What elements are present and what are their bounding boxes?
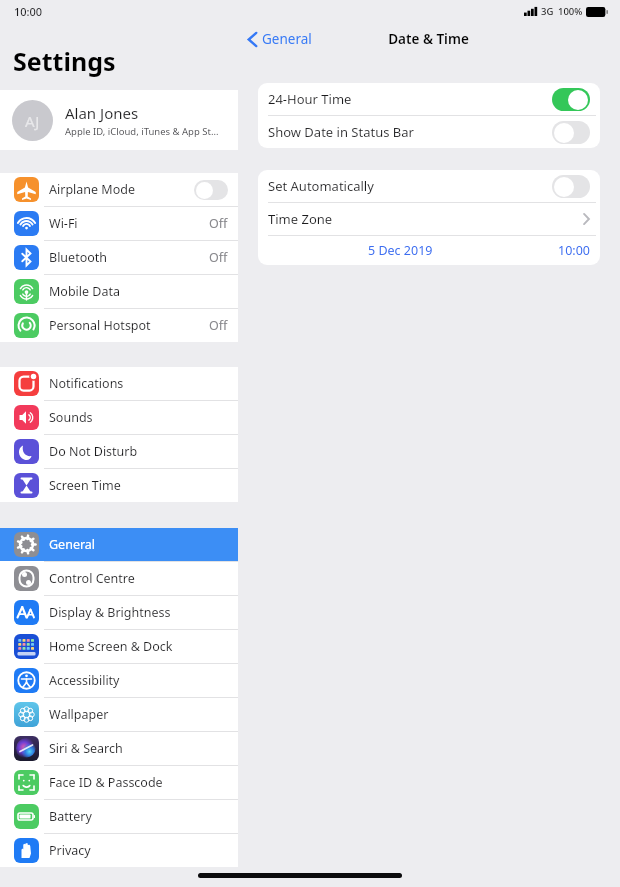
button[interactable]: Notifications [0,367,238,400]
staticText: Accessibility [49,672,228,689]
staticText: Date & Time [388,30,469,48]
button[interactable]: Toggle off [552,175,590,198]
staticText: 5 Dec 2019 [368,242,433,259]
button[interactable]: Wi-Fi [0,207,238,240]
staticText: Off [209,215,228,232]
button[interactable]: Bluetooth [0,241,238,274]
staticText: Off [209,249,228,266]
button[interactable]: 5 Dec 2019 [258,236,600,265]
staticText: General [49,536,228,553]
staticText: Do Not Disturb [49,443,228,460]
staticText: 3G [541,5,554,18]
button[interactable]: Accessibility [0,664,238,697]
staticText: Screen Time [49,477,228,494]
staticText: Notifications [49,375,228,392]
button[interactable]: AJ [0,90,238,150]
button[interactable]: Home Screen & Dock [0,630,238,663]
staticText: Display & Brightness [49,604,228,621]
staticText: 24-Hour Time [268,90,552,108]
button[interactable]: Mobile Data [0,275,238,308]
staticText: Show Date in Status Bar [268,123,552,141]
button[interactable]: Display & Brightness [0,596,238,629]
button[interactable]: Show Date in Status Bar [258,116,600,148]
button[interactable]: Siri & Search [0,732,238,765]
staticText: Sounds [49,409,228,426]
staticText: Mobile Data [49,283,228,300]
staticText: 100% [558,5,583,18]
staticText: Control Centre [49,570,228,587]
staticText: Set Automatically [268,177,552,195]
staticText: Face ID & Passcode [49,774,228,791]
staticText: Privacy [49,842,228,859]
staticText: Wallpaper [49,706,228,723]
button[interactable]: Time Zone [258,203,600,235]
staticText: Off [209,317,228,334]
button[interactable]: Personal Hotspot [0,309,238,342]
button[interactable]: Toggle on [552,88,590,111]
button[interactable]: Control Centre [0,562,238,595]
staticText: Alan Jones [65,103,139,123]
button[interactable]: Toggle off [552,121,590,144]
staticText: Home Screen & Dock [49,638,228,655]
staticText: Apple ID, iCloud, iTunes & App St… [65,125,219,138]
staticText: Airplane Mode [49,181,194,198]
button[interactable]: Face ID & Passcode [0,766,238,799]
button[interactable]: General [238,26,320,52]
staticText: General [262,30,312,48]
staticText: 10:00 [14,4,43,19]
button[interactable]: Airplane Mode [0,173,238,206]
staticText: Time Zone [268,210,583,228]
button[interactable]: 24-Hour Time [258,83,600,115]
button[interactable]: Sounds [0,401,238,434]
staticText: Personal Hotspot [49,317,209,334]
button[interactable]: Privacy [0,834,238,867]
staticText: Battery [49,808,228,825]
staticText: Siri & Search [49,740,228,757]
staticText: Bluetooth [49,249,209,266]
button[interactable]: Set Automatically [258,170,600,202]
staticText: 10:00 [558,242,590,259]
button[interactable]: Battery [0,800,238,833]
button[interactable]: Wallpaper [0,698,238,731]
button[interactable]: Toggle off [194,180,228,200]
staticText: Wi-Fi [49,215,209,232]
button[interactable]: General [0,528,238,561]
staticText: AJ [25,111,40,131]
staticText: Settings [13,44,116,78]
button[interactable]: Do Not Disturb [0,435,238,468]
button[interactable]: Screen Time [0,469,238,502]
